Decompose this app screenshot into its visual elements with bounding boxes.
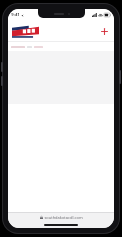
staticText: southdakotacdl.com [44, 215, 83, 220]
button[interactable]: southdakotacdl.com [40, 215, 83, 220]
button[interactable] [12, 25, 39, 38]
button[interactable]: Add [99, 26, 110, 37]
staticText: 9:41 [11, 12, 20, 18]
